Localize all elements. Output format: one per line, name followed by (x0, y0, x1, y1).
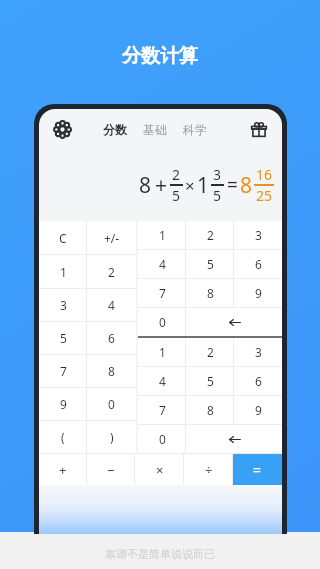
staticText: 2 (207, 227, 214, 243)
staticText: 2 (207, 344, 214, 360)
button[interactable]: 2 (186, 221, 234, 249)
button[interactable]: C (39, 221, 87, 254)
staticText: 8 (207, 402, 214, 418)
staticText: − (107, 461, 115, 479)
button[interactable]: 5 (186, 367, 234, 395)
staticText: 1 (197, 171, 210, 200)
staticText: C (59, 230, 67, 246)
staticText: 1 (159, 227, 166, 243)
staticText: 分数计算 (122, 44, 198, 68)
button[interactable]: 8 (186, 396, 234, 424)
staticText: 5 (213, 186, 222, 205)
button[interactable]: 8 (186, 279, 234, 307)
button[interactable]: 6 (234, 250, 282, 278)
staticText: 8 (207, 285, 214, 301)
staticText: 4 (159, 373, 166, 389)
staticText: 1 (159, 344, 166, 360)
staticText: + (155, 171, 168, 200)
staticText: 0 (159, 431, 166, 447)
staticText: 7 (159, 285, 166, 301)
staticText: 7 (60, 363, 67, 379)
staticText: 科学 (183, 122, 207, 137)
staticText: 分数 (103, 122, 127, 137)
button[interactable]: × (135, 454, 184, 485)
staticText: 8 (108, 363, 115, 379)
staticText: 3 (213, 165, 222, 184)
button[interactable]: − (87, 454, 135, 485)
button[interactable]: 3 (234, 221, 282, 249)
staticText: 16 (256, 165, 273, 184)
button[interactable]: 4 (87, 289, 136, 321)
staticText: 25 (256, 186, 273, 205)
staticText: 2 (172, 165, 181, 184)
staticText: 4 (108, 297, 115, 313)
button[interactable]: 0 (138, 425, 186, 453)
button[interactable]: 9 (39, 388, 87, 420)
button[interactable]: = (233, 454, 282, 485)
button[interactable]: + (39, 454, 87, 485)
button[interactable]: Backspace (186, 308, 282, 336)
button[interactable]: Backspace (186, 425, 282, 453)
button[interactable]: 3 (39, 289, 87, 321)
button[interactable]: ÷ (184, 454, 233, 485)
button[interactable]: 分数 (99, 118, 131, 141)
button[interactable]: 1 (138, 221, 186, 249)
staticText: 5 (60, 330, 67, 346)
staticText: 5 (207, 256, 214, 272)
button[interactable]: 1 (39, 255, 87, 288)
staticText: 6 (108, 330, 115, 346)
button[interactable]: 科学 (179, 118, 211, 141)
button[interactable]: 基础 (139, 118, 171, 141)
button[interactable]: 4 (138, 367, 186, 395)
staticText: 3 (60, 297, 67, 313)
staticText: = (253, 460, 262, 479)
staticText: 0 (159, 314, 166, 330)
button[interactable]: Settings (47, 114, 77, 144)
button[interactable]: 9 (234, 396, 282, 424)
staticText: ( (61, 429, 65, 445)
button[interactable]: 6 (87, 322, 136, 354)
staticText: 9 (255, 285, 262, 301)
staticText: 0 (108, 396, 115, 412)
button[interactable]: 1 (138, 338, 186, 366)
button[interactable]: 5 (186, 250, 234, 278)
staticText: × (156, 461, 164, 479)
staticText: 8 (240, 171, 253, 200)
staticText: 9 (255, 402, 262, 418)
staticText: ÷ (205, 461, 213, 479)
button[interactable]: 0 (87, 388, 136, 420)
button[interactable]: ( (39, 421, 87, 453)
button[interactable]: 8 (87, 355, 136, 387)
staticText: + (59, 461, 67, 479)
staticText: 3 (255, 344, 262, 360)
button[interactable]: +/- (87, 221, 136, 254)
button[interactable]: 2 (87, 255, 136, 288)
staticText: = (227, 172, 238, 198)
staticText: ) (110, 429, 114, 445)
button[interactable]: 2 (186, 338, 234, 366)
staticText: +/- (104, 230, 120, 246)
button[interactable]: 5 (39, 322, 87, 354)
button[interactable]: 0 (138, 308, 186, 336)
button[interactable]: ) (87, 421, 136, 453)
button[interactable]: 7 (138, 279, 186, 307)
button[interactable]: 4 (138, 250, 186, 278)
staticText: 4 (159, 256, 166, 272)
button[interactable]: 3 (234, 338, 282, 366)
staticText: 9 (60, 396, 67, 412)
button[interactable]: 7 (39, 355, 87, 387)
button[interactable]: 9 (234, 279, 282, 307)
staticText: 5 (172, 186, 181, 205)
staticText: 7 (159, 402, 166, 418)
staticText: 2 (108, 264, 115, 280)
staticText: × (185, 174, 195, 197)
button[interactable]: Gift (244, 114, 274, 144)
staticText: 1 (60, 264, 67, 280)
staticText: 8 (139, 171, 152, 200)
staticText: 5 (207, 373, 214, 389)
button[interactable]: 6 (234, 367, 282, 395)
staticText: 6 (255, 373, 262, 389)
staticText: 3 (255, 227, 262, 243)
staticText: 6 (255, 256, 262, 272)
button[interactable]: 7 (138, 396, 186, 424)
